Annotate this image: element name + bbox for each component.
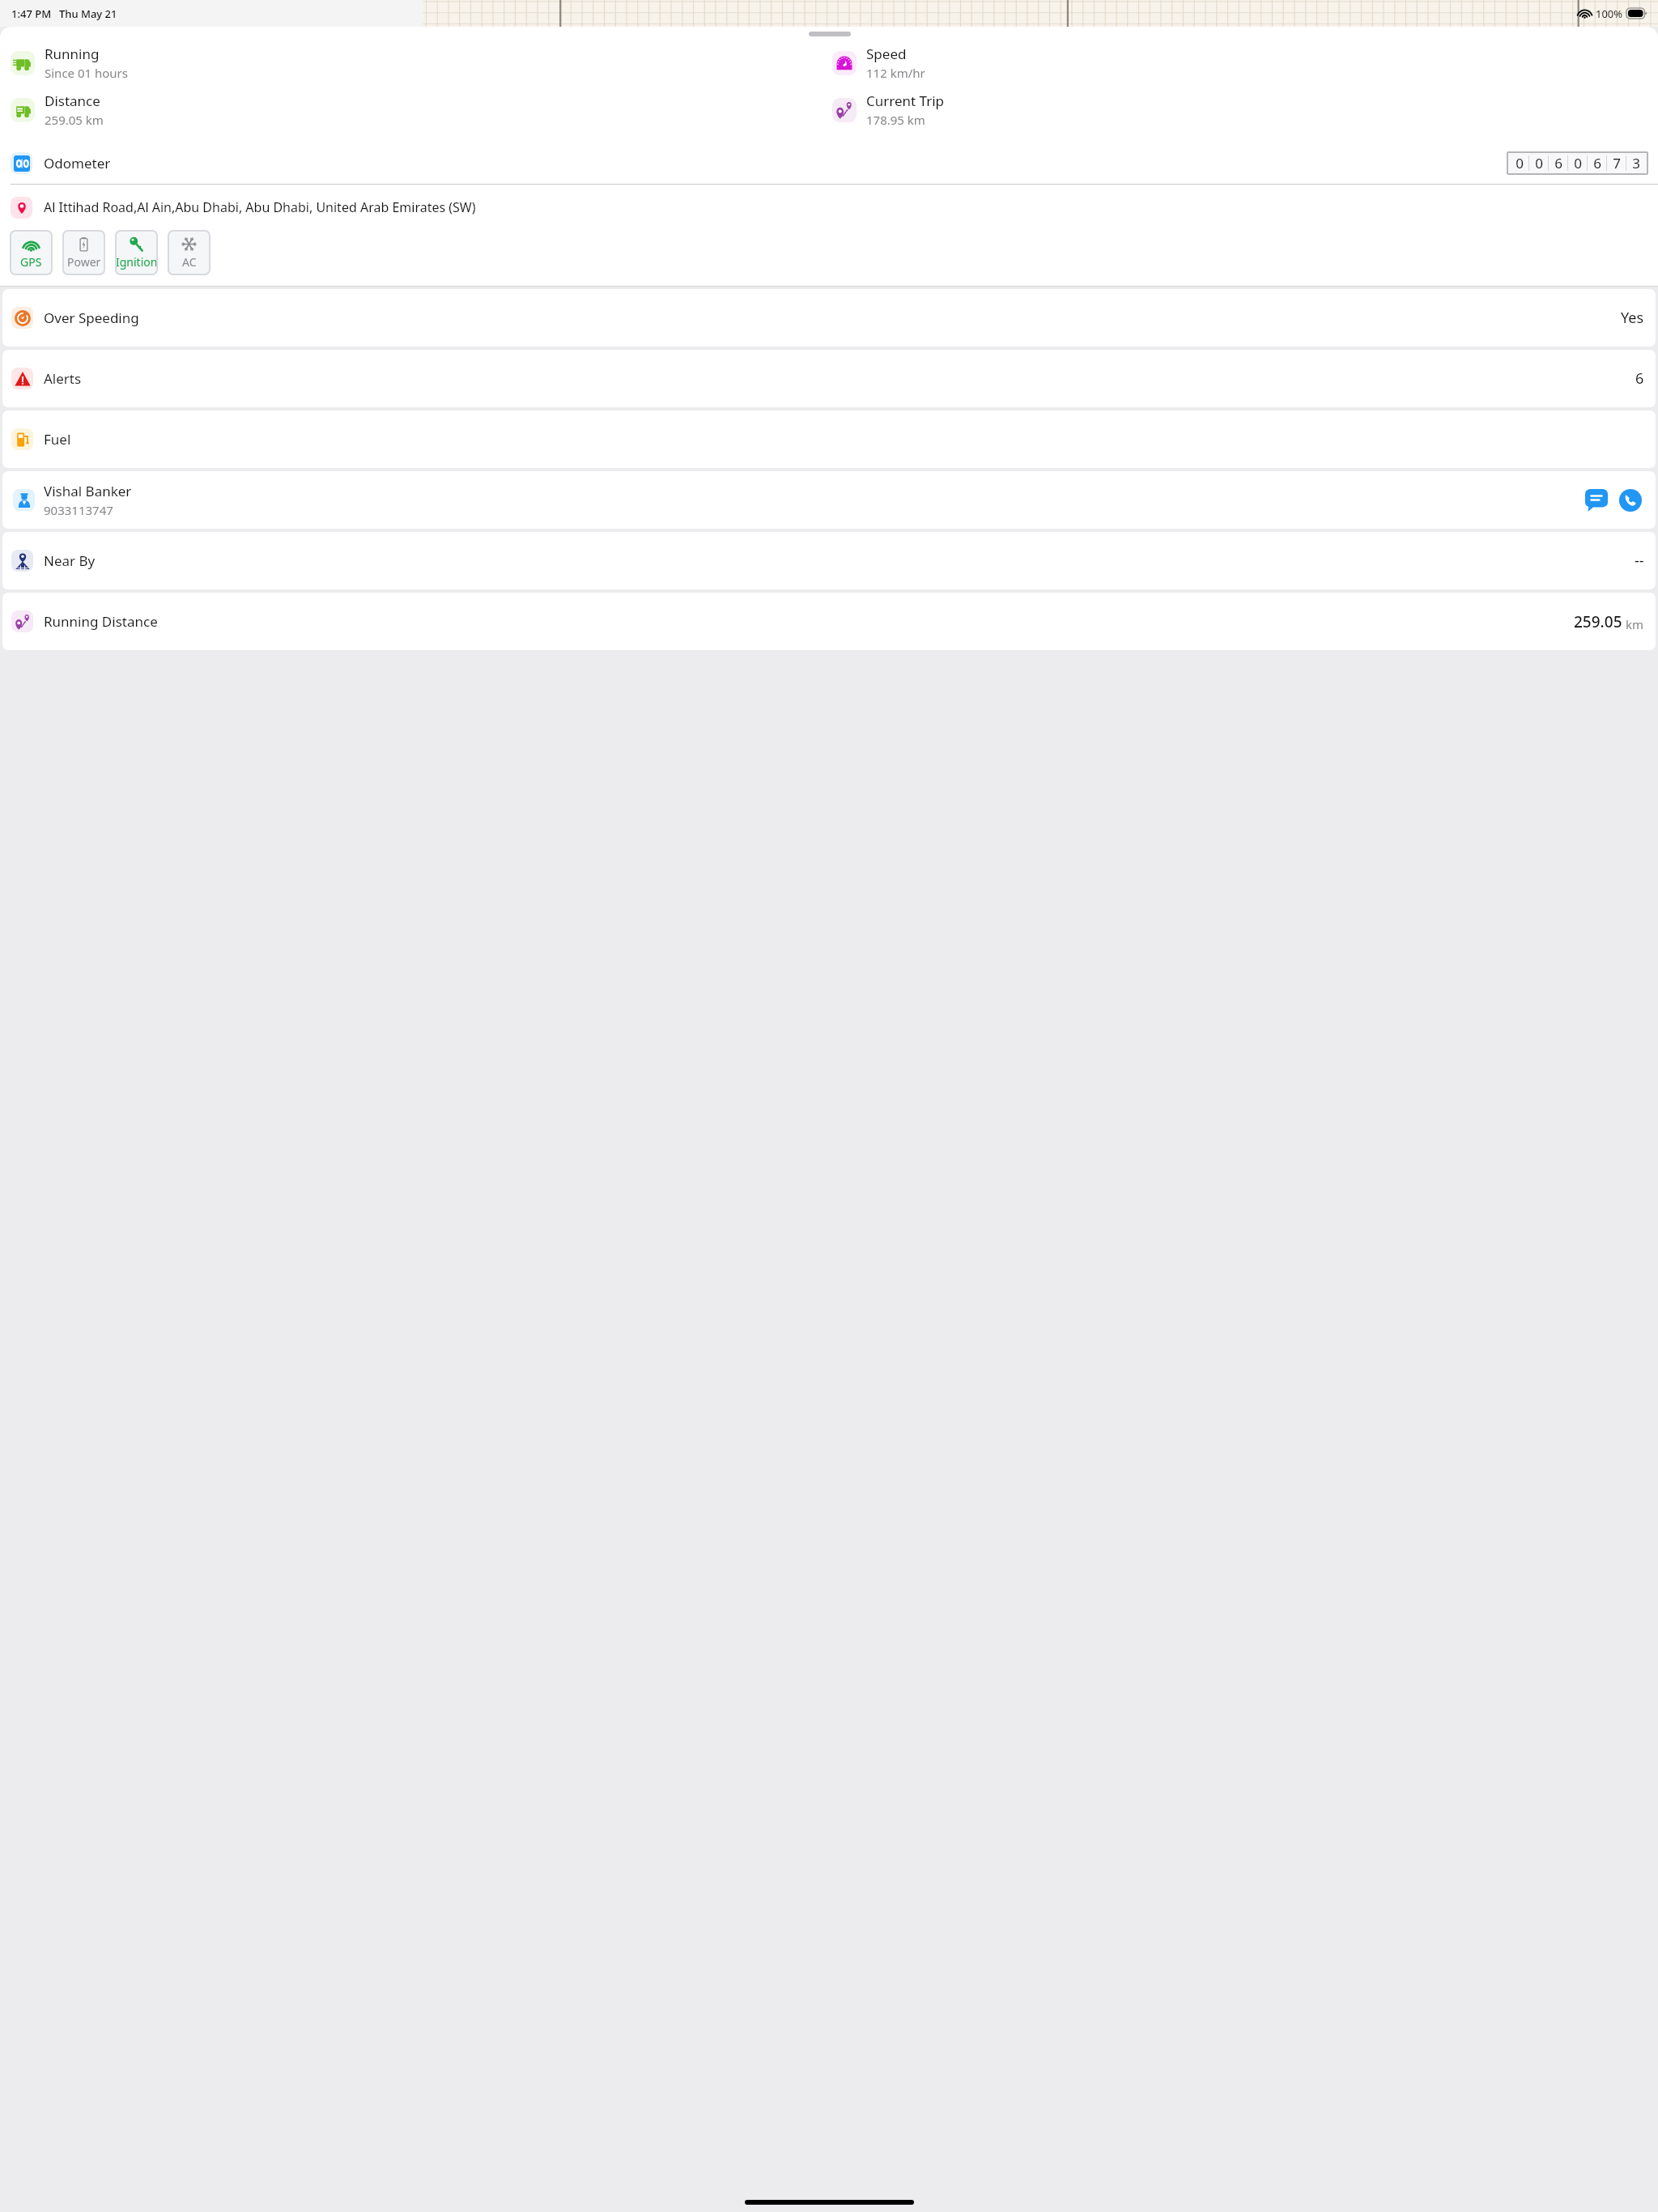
- staticText: 3: [1632, 154, 1640, 172]
- staticText: Vishal Banker: [44, 482, 132, 500]
- staticText: Al Ittihad Road,Al Ain,Abu Dhabi, Abu Dh…: [44, 198, 476, 216]
- button[interactable]: Call driver: [1617, 487, 1644, 514]
- staticText: 6: [1554, 154, 1562, 172]
- button[interactable]: Fuel: [2, 410, 1656, 468]
- staticText: Speed: [866, 45, 907, 63]
- staticText: Ignition: [116, 254, 158, 270]
- button[interactable]: AC: [168, 230, 210, 275]
- staticText: GPS: [20, 254, 42, 270]
- staticText: 1:47 PM: [11, 6, 52, 21]
- staticText: Current Trip: [866, 91, 945, 110]
- staticText: Near By: [44, 551, 96, 570]
- staticText: --: [1635, 551, 1644, 571]
- button[interactable]: Distance: [11, 91, 826, 128]
- staticText: Over Speeding: [44, 308, 139, 327]
- button[interactable]: Ignition: [115, 230, 158, 275]
- staticText: 0: [1574, 154, 1582, 172]
- staticText: 6: [1635, 368, 1644, 389]
- button[interactable]: Vishal Banker: [2, 471, 1656, 529]
- button[interactable]: Alerts: [2, 350, 1656, 407]
- staticText: Distance: [45, 91, 100, 110]
- staticText: 259.05: [1574, 611, 1622, 632]
- button[interactable]: Over Speeding: [2, 289, 1656, 347]
- staticText: Yes: [1621, 308, 1644, 328]
- staticText: Since 01 hours: [45, 65, 128, 81]
- staticText: 100%: [1596, 6, 1623, 21]
- button[interactable]: Near By: [2, 532, 1656, 589]
- button[interactable]: Speed: [832, 45, 1647, 81]
- staticText: 178.95 km: [866, 112, 925, 128]
- button[interactable]: Al Ittihad Road,Al Ain,Abu Dhabi, Abu Dh…: [0, 185, 1658, 230]
- staticText: km: [1626, 616, 1644, 632]
- staticText: 112 km/hr: [866, 65, 925, 81]
- staticText: 0: [1535, 154, 1543, 172]
- button[interactable]: Odometer: [0, 142, 1658, 184]
- staticText: Alerts: [44, 369, 82, 388]
- staticText: 259.05 km: [45, 112, 104, 128]
- staticText: Running Distance: [44, 612, 158, 631]
- button[interactable]: Power: [62, 230, 105, 275]
- staticText: 7: [1613, 154, 1621, 172]
- staticText: Thu May 21: [59, 6, 117, 21]
- staticText: 0: [1516, 154, 1524, 172]
- staticText: Power: [67, 254, 101, 270]
- button[interactable]: GPS: [10, 230, 53, 275]
- button[interactable]: Running Distance: [2, 593, 1656, 650]
- staticText: AC: [182, 254, 197, 270]
- staticText: Running: [45, 45, 100, 63]
- staticText: Odometer: [44, 154, 111, 172]
- button[interactable]: Current Trip: [832, 91, 1647, 128]
- button[interactable]: Running: [11, 45, 826, 81]
- staticText: 6: [1593, 154, 1601, 172]
- button[interactable]: Message driver: [1583, 487, 1610, 514]
- staticText: 9033113747: [44, 502, 113, 518]
- staticText: Fuel: [44, 430, 71, 449]
